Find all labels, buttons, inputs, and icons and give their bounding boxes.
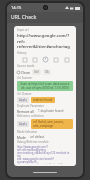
staticText: url defaut: [30, 135, 45, 139]
staticText: Reference collection: [17, 114, 44, 118]
staticText: Apply: [19, 98, 27, 102]
staticText: 14:15: [11, 5, 22, 10]
staticText: 1 duplicate found: [38, 109, 64, 113]
staticText: Ok: [45, 70, 49, 74]
staticText: URL Check: [11, 14, 37, 21]
button[interactable]: Ok: [43, 69, 51, 75]
button[interactable]: Remove all: [17, 109, 73, 113]
button[interactable]: Apply: [17, 121, 29, 127]
staticText: Apply: [19, 122, 27, 126]
staticText: http://www.google.com/?ref=referrer&mark…: [17, 145, 73, 164]
staticText: Remove all: [17, 109, 34, 113]
button[interactable]: History action 4: [52, 56, 59, 63]
staticText: Mode Selection: [17, 130, 38, 134]
button[interactable]: Clean: [17, 70, 30, 75]
staticText: Url Scanner: [17, 76, 33, 80]
button[interactable]: ref, fbclid, utm_source, utm_campaign: [31, 119, 73, 129]
staticText: Util: [34, 70, 39, 74]
staticText: Clean: [21, 70, 30, 75]
staticText: History: [17, 51, 27, 55]
staticText: Duplicate Parameter: [17, 104, 45, 108]
button[interactable]: History action 5: [63, 56, 70, 63]
staticText: Debug/Referrer module: [17, 140, 49, 144]
staticText: ref, fbclid, utm_source, utm_campaign: [33, 120, 71, 128]
staticText: Mode: [17, 135, 26, 139]
button[interactable]: redirect found: [31, 97, 55, 103]
button[interactable]: History action 1: [21, 56, 28, 63]
button[interactable]: History action 2: [31, 56, 38, 63]
staticText: redirect found: [33, 98, 53, 102]
button[interactable]: Scan at http://url.scan: data source ok,…: [17, 81, 73, 91]
staticText: Source mode: [17, 64, 35, 68]
staticText: http://www.google.com/?ref= referrer&lit…: [17, 33, 73, 49]
button[interactable]: Apply: [17, 97, 29, 103]
button[interactable]: History action 3: [42, 56, 49, 63]
staticText: Input url: [17, 28, 29, 32]
button[interactable]: Mode: [17, 135, 73, 139]
button[interactable]: Util: [32, 69, 41, 75]
staticText: Url Cleaner: [17, 92, 32, 96]
staticText: Scan at http://url.scan: data source ok,…: [19, 82, 71, 90]
